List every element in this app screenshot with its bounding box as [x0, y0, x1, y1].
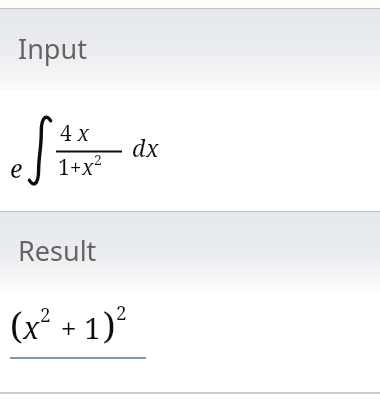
button[interactable]: Result	[0, 211, 380, 291]
staticText: Result	[18, 232, 97, 269]
staticText: Input	[18, 30, 87, 67]
button[interactable]	[0, 291, 380, 392]
button[interactable]	[0, 90, 380, 211]
button[interactable]: Input	[0, 8, 380, 90]
